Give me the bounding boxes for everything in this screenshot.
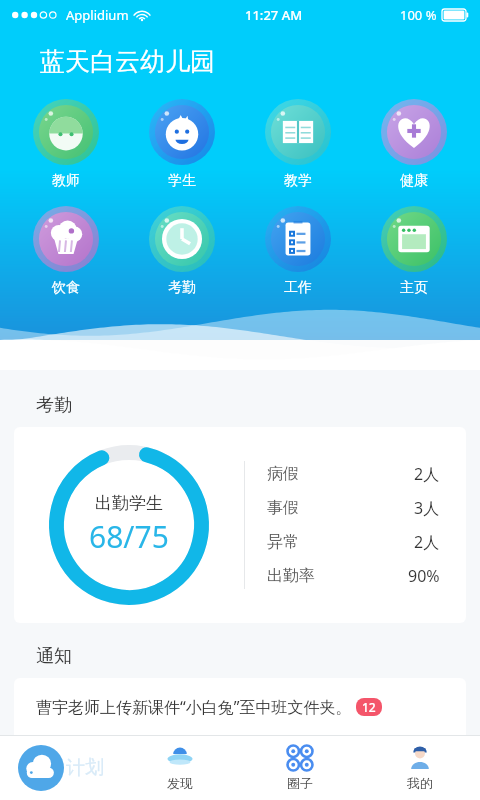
staticText: 主页 [400, 279, 428, 297]
button[interactable]: 曹宇老师上传新课件“小白兔”至中班文件夹。 [14, 678, 466, 798]
staticText: 工作 [284, 279, 312, 297]
staticText: 发现 [167, 775, 193, 791]
staticText: 68/75 [89, 516, 169, 557]
button[interactable]: 出勤学生 [14, 427, 466, 623]
staticText: 考勤 [168, 279, 196, 297]
button[interactable]: 饮食 [16, 206, 116, 297]
staticText: 蓝天白云幼儿园 [40, 46, 215, 77]
staticText: 通知 [36, 645, 72, 668]
button[interactable]: 我的 [360, 736, 480, 800]
button[interactable]: 工作 [248, 206, 348, 297]
staticText: 饮食 [52, 279, 80, 297]
staticText: 教师 [52, 172, 80, 190]
staticText: 教学 [284, 172, 312, 190]
staticText: 100 % [400, 6, 437, 24]
staticText: 病假 [267, 464, 299, 484]
staticText: 出勤率 [267, 566, 315, 586]
staticText: Applidium [66, 6, 129, 24]
staticText: 考勤 [36, 394, 72, 417]
button[interactable]: 学生 [132, 99, 232, 190]
staticText: 出勤学生 [95, 493, 163, 514]
button[interactable]: 主页 [364, 206, 464, 297]
staticText: 3人 [414, 497, 440, 519]
staticText: 90% [408, 565, 440, 587]
staticText: 异常 [267, 532, 299, 552]
staticText: 12 [362, 699, 376, 715]
staticText: 健康 [400, 172, 428, 190]
staticText: 计划 [66, 756, 104, 780]
staticText: 2人 [414, 531, 440, 553]
staticText: 曹宇老师上传新课件“小白兔”至中班文件夹。 [36, 696, 352, 718]
staticText: 学生 [168, 172, 196, 190]
button[interactable]: 教师 [16, 99, 116, 190]
button[interactable]: 圈子 [240, 736, 360, 800]
staticText: 圈子 [287, 775, 313, 791]
button[interactable]: 考勤 [132, 206, 232, 297]
button[interactable]: 教学 [248, 99, 348, 190]
staticText: 2人 [414, 463, 440, 485]
staticText: 事假 [267, 498, 299, 518]
button[interactable]: 计划 [0, 736, 120, 800]
staticText: 11:27 AM [245, 6, 303, 24]
button[interactable]: 发现 [120, 736, 240, 800]
staticText: 我的 [407, 775, 433, 791]
button[interactable]: 健康 [364, 99, 464, 190]
